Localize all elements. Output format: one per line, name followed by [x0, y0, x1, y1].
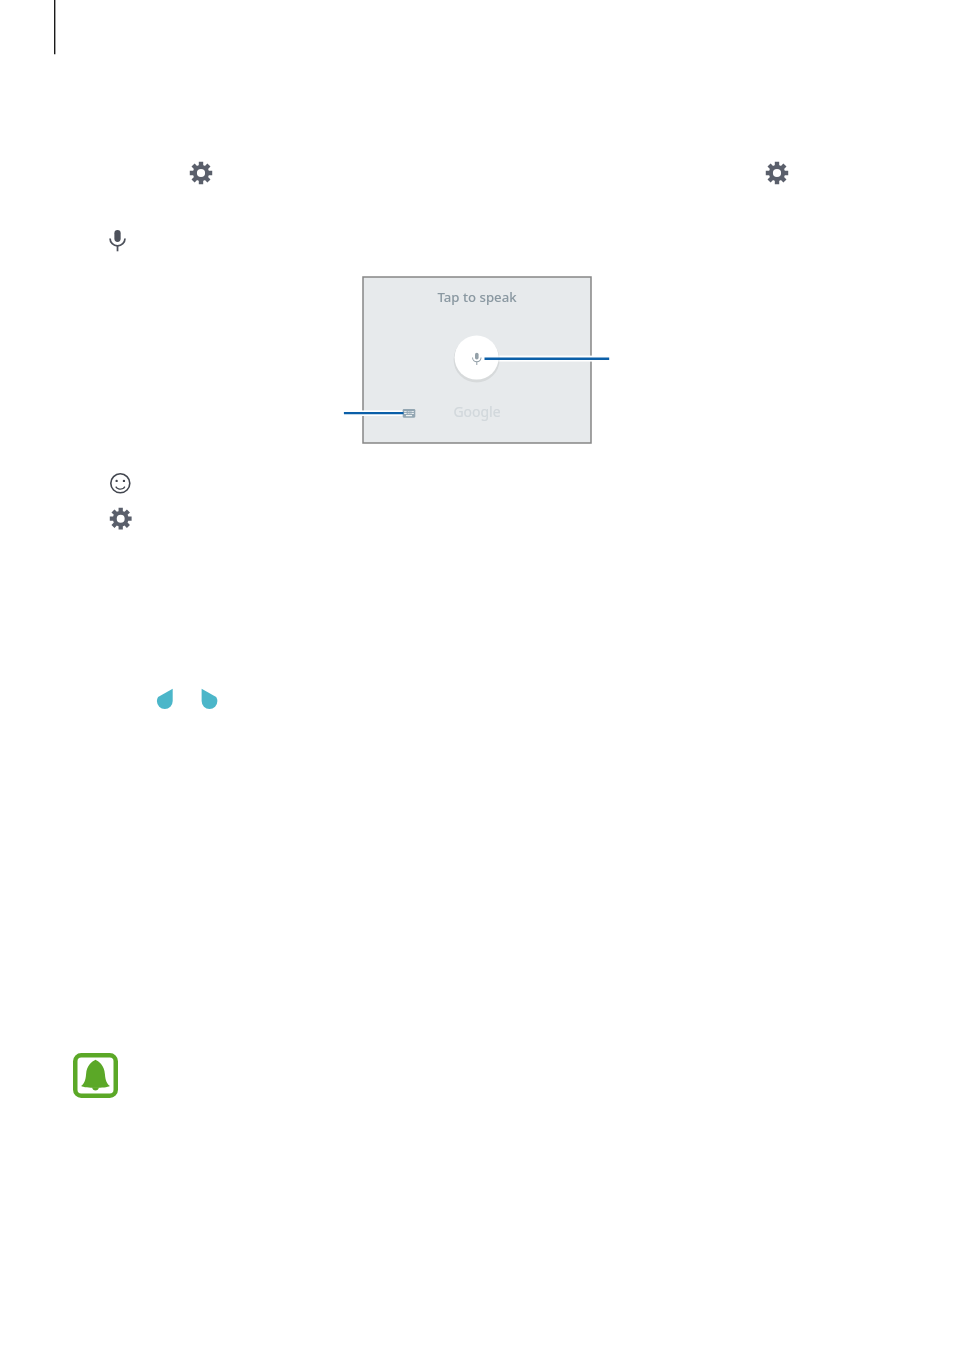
button[interactable]: Note	[73, 1053, 118, 1098]
button[interactable]: Settings	[763, 159, 791, 187]
button[interactable]: Voice input	[109, 228, 126, 253]
button[interactable]: Emoji	[108, 471, 133, 496]
staticText: Google	[363, 402, 591, 421]
button[interactable]: Tap to speak	[363, 277, 591, 443]
staticText: Tap to speak	[363, 288, 591, 306]
button[interactable]: Settings	[187, 159, 215, 187]
button[interactable]: Settings	[107, 505, 134, 532]
